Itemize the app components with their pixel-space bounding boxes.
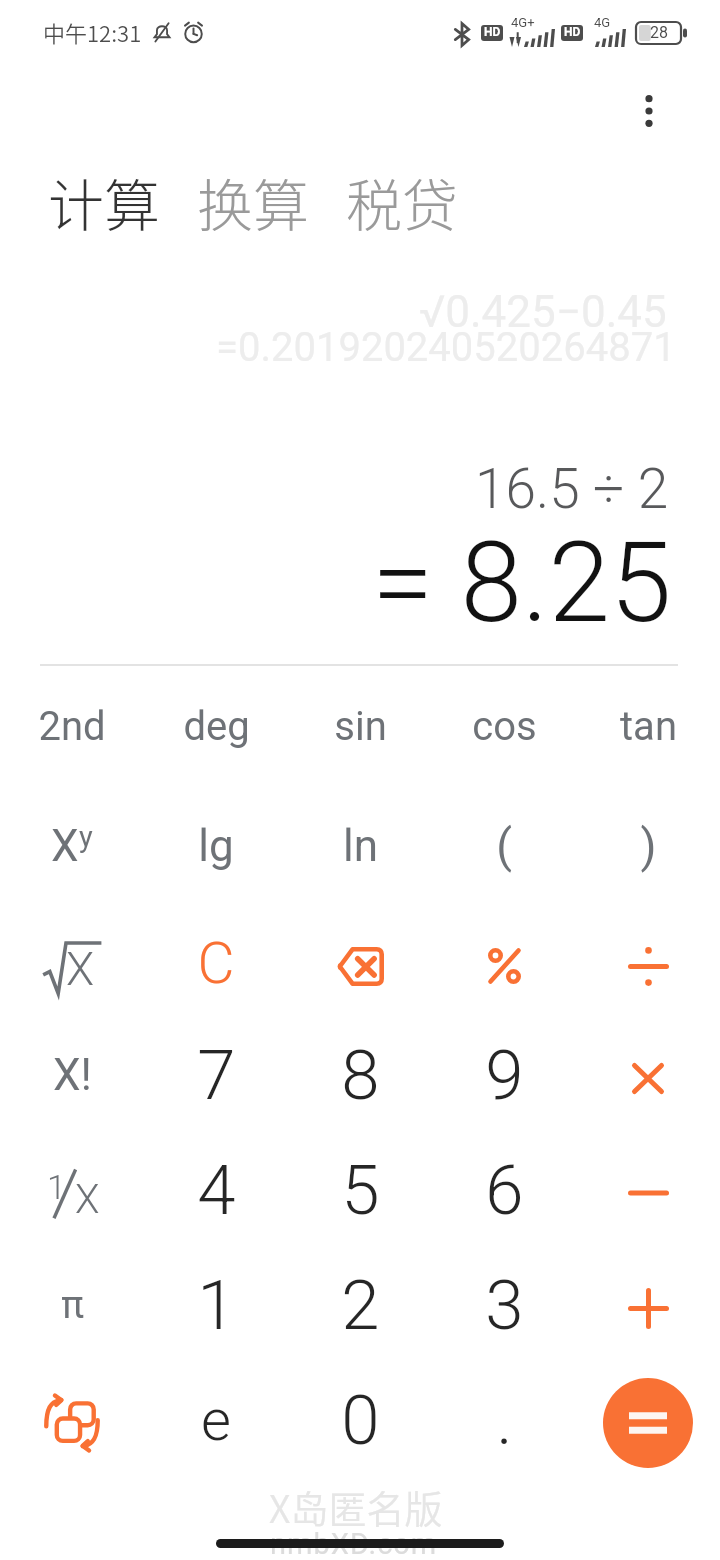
staticText: 2nd	[38, 703, 106, 750]
button[interactable]: Unit convert	[0, 1363, 144, 1477]
other: Divide	[628, 947, 669, 986]
other: Plus	[628, 1288, 669, 1329]
button[interactable]: Minus	[576, 1133, 720, 1247]
staticText: 计算	[48, 161, 160, 242]
button[interactable]: 8	[288, 1018, 432, 1132]
staticText: 4	[197, 1150, 236, 1231]
staticText: 1	[197, 1265, 236, 1346]
staticText: 3	[485, 1265, 524, 1346]
staticText: 2	[341, 1265, 380, 1346]
staticText: deg	[183, 703, 250, 750]
staticText: HD	[564, 25, 581, 39]
button[interactable]: sin	[288, 669, 432, 783]
button[interactable]: Percent	[432, 906, 576, 1020]
button[interactable]: 6	[432, 1133, 576, 1247]
staticText: cos	[472, 703, 537, 750]
staticText: y	[79, 820, 93, 854]
staticText: 中午12:31	[43, 16, 142, 48]
staticText: .	[496, 1380, 513, 1461]
button[interactable]: 4	[144, 1133, 288, 1247]
other: Percent	[488, 948, 521, 984]
staticText: C	[197, 930, 235, 997]
staticText: 9	[485, 1035, 524, 1116]
button[interactable]: 计算	[42, 157, 166, 246]
staticText: 税贷	[346, 161, 458, 242]
button[interactable]: 2nd	[0, 669, 144, 783]
staticText: =0.201920240520264871	[216, 324, 676, 371]
other: Backspace	[337, 947, 384, 986]
button[interactable]: More options	[601, 63, 697, 159]
button[interactable]: 税贷	[340, 157, 464, 246]
staticText: X	[51, 820, 79, 872]
button[interactable]: cos	[432, 669, 576, 783]
staticText: 4G+	[511, 15, 535, 30]
button[interactable]: Divide	[576, 906, 720, 1020]
staticText: e	[201, 1386, 231, 1454]
other: Minus	[628, 1189, 669, 1197]
button[interactable]: (	[432, 789, 576, 903]
staticText: 5	[341, 1150, 380, 1231]
staticText: sin	[334, 703, 387, 750]
button[interactable]: X!	[0, 1018, 144, 1132]
button[interactable]: ln	[288, 789, 432, 903]
staticText: nmbXD.com	[270, 1527, 438, 1560]
button[interactable]: Square root	[0, 906, 144, 1020]
button[interactable]: Backspace	[288, 906, 432, 1020]
button[interactable]: 7	[144, 1018, 288, 1132]
button[interactable]: tan	[576, 669, 720, 783]
staticText: (	[496, 819, 512, 873]
other: Unit convert	[41, 1395, 103, 1451]
button[interactable]: π	[0, 1248, 144, 1362]
other: Square root	[42, 938, 102, 994]
staticText: = 8.25	[372, 518, 672, 648]
staticText: √0.425−0.45	[419, 286, 667, 338]
button[interactable]: 2	[288, 1248, 432, 1362]
button[interactable]: 3	[432, 1248, 576, 1362]
other: Multiply	[632, 1063, 664, 1094]
button[interactable]: Equals	[576, 1363, 720, 1477]
staticText: X!	[53, 1049, 92, 1101]
button[interactable]: Plus	[576, 1248, 720, 1362]
button[interactable]: 0	[288, 1363, 432, 1477]
button[interactable]: Reciprocal	[0, 1133, 144, 1247]
button[interactable]: deg	[144, 669, 288, 783]
staticText: X	[75, 1176, 100, 1223]
button[interactable]: 1	[144, 1248, 288, 1362]
button[interactable]: X	[0, 789, 144, 903]
button[interactable]: e	[144, 1363, 288, 1477]
staticText: 28	[650, 23, 668, 42]
staticText: 1	[47, 1167, 66, 1207]
button[interactable]: 9	[432, 1018, 576, 1132]
button[interactable]: 换算	[191, 157, 315, 246]
staticText: 6	[485, 1150, 524, 1231]
staticText: π	[61, 1283, 84, 1328]
staticText: )	[640, 819, 657, 873]
button[interactable]: Multiply	[576, 1018, 720, 1132]
staticText: 7	[197, 1035, 236, 1116]
staticText: tan	[620, 703, 677, 750]
button[interactable]: )	[576, 789, 720, 903]
staticText: 换算	[197, 161, 309, 242]
button[interactable]: .	[432, 1363, 576, 1477]
staticText: X岛匿名版	[269, 1479, 443, 1534]
button[interactable]: lg	[144, 789, 288, 903]
staticText: HD	[484, 25, 501, 39]
staticText: ln	[343, 820, 378, 872]
button[interactable]: C	[144, 906, 288, 1020]
staticText: 4G	[594, 15, 611, 30]
staticText: 0	[341, 1380, 380, 1461]
staticText: X	[66, 942, 95, 996]
button[interactable]: 5	[288, 1133, 432, 1247]
staticText: 16.5 ÷ 2	[475, 457, 669, 521]
staticText: lg	[198, 820, 234, 872]
other: Reciprocal	[42, 1165, 102, 1221]
other: Equals	[603, 1378, 693, 1468]
staticText: 8	[341, 1035, 380, 1116]
